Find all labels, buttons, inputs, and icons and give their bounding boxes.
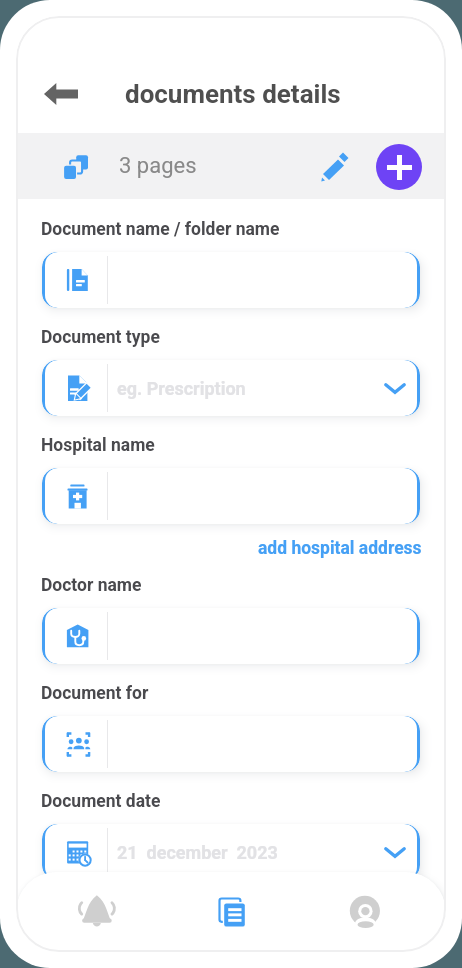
- button[interactable]: eg. Prescription: [42, 360, 420, 416]
- button[interactable]: add hospital address: [258, 538, 422, 559]
- button[interactable]: [42, 468, 420, 524]
- button[interactable]: Edit: [313, 145, 357, 189]
- staticText: eg. Prescription: [117, 378, 246, 399]
- staticText: Doctor name: [41, 575, 142, 596]
- button[interactable]: Notifications: [69, 884, 125, 940]
- button[interactable]: 21 december 2023: [42, 824, 420, 880]
- button[interactable]: Back: [37, 70, 85, 118]
- staticText: 3 pages: [119, 153, 197, 179]
- button[interactable]: Add: [376, 144, 422, 190]
- staticText: Document name / folder name: [41, 219, 280, 240]
- button[interactable]: [42, 252, 420, 308]
- button[interactable]: [42, 716, 420, 772]
- staticText: Document date: [41, 791, 161, 812]
- button[interactable]: [42, 608, 420, 664]
- button[interactable]: Documents: [203, 884, 259, 940]
- staticText: Document for: [41, 683, 149, 704]
- button[interactable]: Profile: [337, 884, 393, 940]
- staticText: Document type: [41, 327, 160, 348]
- staticText: 21 december 2023: [117, 842, 278, 863]
- staticText: documents details: [125, 79, 341, 109]
- staticText: Hospital name: [41, 435, 155, 456]
